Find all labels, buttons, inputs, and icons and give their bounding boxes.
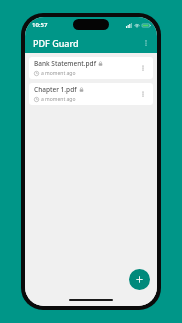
staticText: a moment ago — [41, 70, 76, 77]
staticText: Chapter 1.pdf — [34, 85, 77, 94]
button[interactable]: Add PDF — [129, 269, 150, 290]
button[interactable]: File options — [135, 60, 151, 76]
button[interactable]: More options — [138, 35, 154, 51]
staticText: 10:57 — [32, 21, 48, 29]
staticText: Bank Statement.pdf — [34, 59, 96, 68]
staticText: PDF Guard — [33, 37, 79, 49]
button[interactable]: File options — [135, 86, 151, 102]
button[interactable]: Chapter 1.pdf — [29, 83, 153, 105]
button[interactable]: Bank Statement.pdf — [29, 57, 153, 79]
staticText: a moment ago — [41, 96, 76, 103]
